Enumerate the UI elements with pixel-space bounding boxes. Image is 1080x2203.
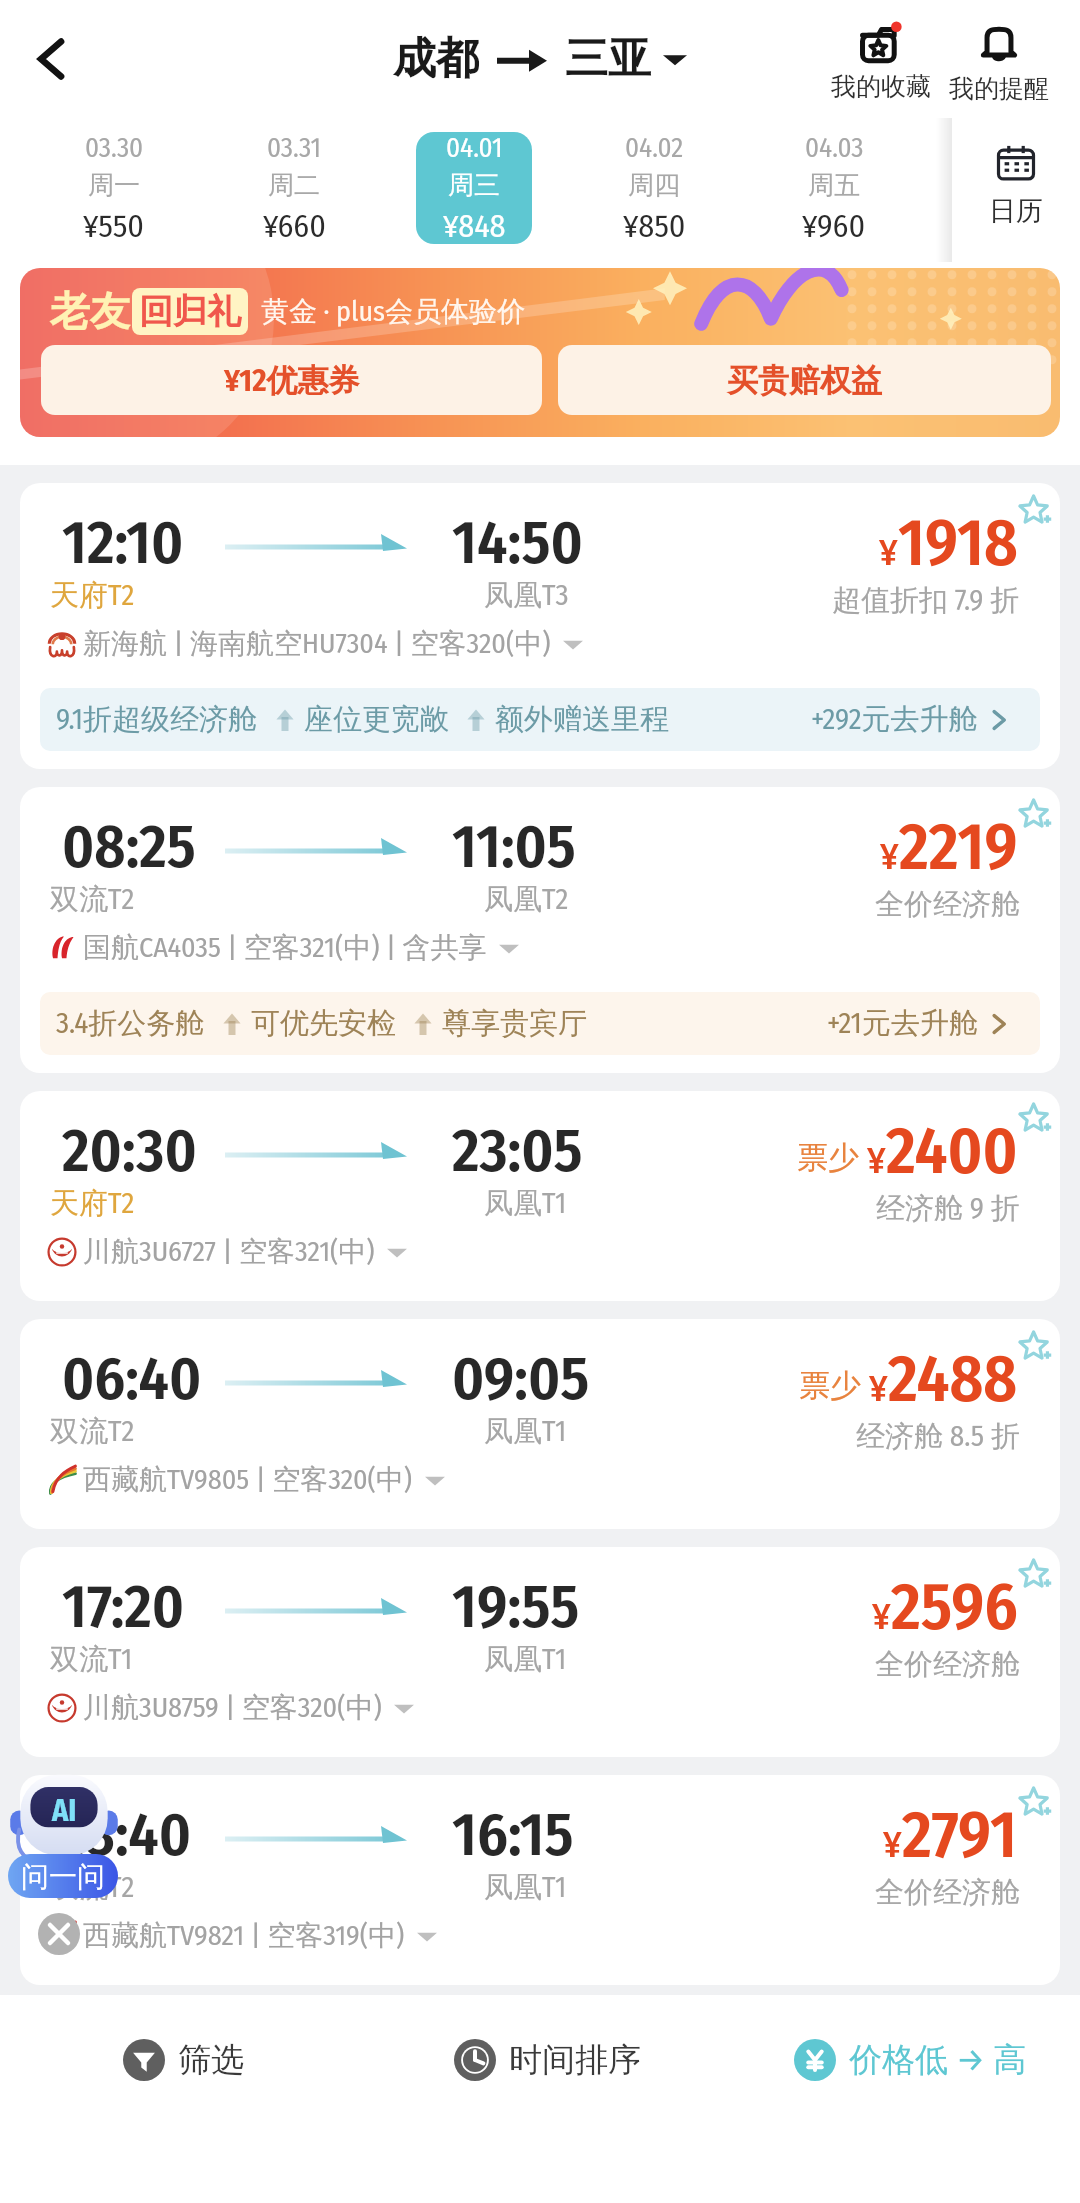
staticText: 全价经济舱 <box>875 1874 1020 1911</box>
button[interactable]: 时间排序 <box>454 2030 641 2090</box>
button[interactable]: 12:10 <box>20 483 1060 769</box>
staticText: 我的收藏 <box>831 71 931 102</box>
staticText: 时间排序 <box>509 2039 641 2081</box>
button[interactable]: 日历 <box>952 144 1080 228</box>
staticText: 03.31 <box>267 132 321 164</box>
staticText: +21元去升舱 <box>827 1005 978 1042</box>
staticText: AI <box>52 1793 77 1829</box>
staticText: ¥ <box>867 1138 886 1182</box>
staticText: 尊享贵宾厅 <box>442 1005 587 1042</box>
staticText: 票少 <box>799 1366 861 1405</box>
staticText: ¥ <box>872 1594 891 1638</box>
staticText: 价格低 → 高 <box>849 2039 1027 2081</box>
button[interactable]: 9.1折超级经济舱 <box>56 688 1010 751</box>
staticText: 04.02 <box>625 132 684 164</box>
staticText: ¥ <box>880 834 899 878</box>
staticText: 17:20 <box>62 1571 185 1643</box>
staticText: 川航3U8759 | 空客320(中) <box>83 1690 382 1725</box>
staticText: 天府T2 <box>50 577 135 614</box>
staticText: 凤凰T2 <box>484 881 569 918</box>
staticText: 04.01 <box>446 132 503 164</box>
staticText: ¥660 <box>263 207 326 244</box>
button[interactable]: 03.30 <box>56 132 172 244</box>
staticText: 凤凰T1 <box>484 1641 567 1678</box>
button[interactable]: 04.03 <box>776 132 892 244</box>
staticText: 凤凰T1 <box>484 1185 567 1222</box>
button[interactable]: 03.31 <box>236 132 352 244</box>
staticText: 日历 <box>989 194 1043 228</box>
staticText: 周三 <box>448 169 500 202</box>
staticText: 23:05 <box>452 1115 583 1187</box>
staticText: 我的提醒 <box>949 73 1049 104</box>
staticText: 1918 <box>898 504 1018 582</box>
staticText: 西藏航TV9805 | 空客320(中) <box>83 1462 413 1497</box>
button[interactable]: 买贵赔权益 <box>558 345 1051 415</box>
staticText: 双流T2 <box>50 1869 135 1906</box>
button[interactable]: AI assistant <box>8 1768 120 1880</box>
staticText: 08:25 <box>62 811 196 883</box>
staticText: 11:05 <box>452 811 576 883</box>
staticText: 06:40 <box>62 1343 202 1415</box>
staticText: 周二 <box>268 169 320 202</box>
button[interactable]: 我的提醒 <box>940 20 1058 106</box>
staticText: 三亚 <box>565 32 651 86</box>
button[interactable]: 06:40 <box>20 1319 1060 1529</box>
button[interactable]: 价格低 → 高 <box>794 2030 1027 2090</box>
staticText: 额外赠送里程 <box>495 701 669 738</box>
staticText: 9.1折超级经济舱 <box>56 701 258 738</box>
staticText: 问一问 <box>21 1859 105 1894</box>
staticText: 全价经济舱 <box>875 1646 1020 1683</box>
staticText: 票少 <box>797 1138 859 1177</box>
staticText: 天府T2 <box>50 1185 135 1222</box>
staticText: 12:10 <box>62 507 184 579</box>
staticText: 双流T2 <box>50 1413 135 1450</box>
staticText: 03.30 <box>85 132 144 164</box>
staticText: 16:15 <box>452 1799 574 1871</box>
button[interactable]: 筛选 <box>123 2030 244 2090</box>
staticText: 回归礼 <box>139 290 241 333</box>
button[interactable]: 04.02 <box>596 132 712 244</box>
button[interactable]: 问一问 <box>8 1854 118 1898</box>
staticText: 3.4折公务舱 <box>56 1005 205 1042</box>
button[interactable]: Close <box>38 1913 80 1955</box>
staticText: 新海航 | 海南航空HU7304 | 空客320(中) <box>83 626 551 661</box>
button[interactable]: 我的收藏 <box>822 20 940 104</box>
button[interactable]: 20:30 <box>20 1091 1060 1301</box>
staticText: 20:30 <box>62 1115 197 1187</box>
button[interactable]: 13:40 <box>20 1775 1060 1985</box>
staticText: 13:40 <box>62 1799 192 1871</box>
button[interactable]: 3.4折公务舱 <box>56 992 1010 1055</box>
staticText: 凤凰T3 <box>484 577 569 614</box>
staticText: 超值折扣 7.9 折 <box>832 582 1020 619</box>
button[interactable]: Back <box>14 21 90 97</box>
staticText: 2219 <box>899 808 1018 886</box>
staticText: 04.03 <box>805 132 864 164</box>
staticText: 09:05 <box>452 1343 590 1415</box>
staticText: 2596 <box>891 1568 1018 1646</box>
staticText: 双流T2 <box>50 881 135 918</box>
button[interactable]: 17:20 <box>20 1547 1060 1757</box>
staticText: 2488 <box>888 1340 1018 1418</box>
staticText: +292元去升舱 <box>811 701 978 738</box>
staticText: 双流T1 <box>50 1641 133 1678</box>
staticText: 14:50 <box>452 507 583 579</box>
staticText: 老友 <box>50 286 130 336</box>
staticText: ¥12优惠券 <box>224 361 360 400</box>
staticText: ¥ <box>869 1366 888 1410</box>
staticText: ¥550 <box>83 207 145 244</box>
staticText: ¥848 <box>443 207 506 244</box>
staticText: ¥ <box>879 530 898 574</box>
button[interactable]: 老友 <box>20 268 1060 437</box>
staticText: 西藏航TV9821 | 空客319(中) <box>83 1918 405 1953</box>
button[interactable]: 08:25 <box>20 787 1060 1073</box>
button[interactable]: ¥12优惠券 <box>41 345 542 415</box>
staticText: 可优先安检 <box>251 1005 396 1042</box>
staticText: 座位更宽敞 <box>304 701 449 738</box>
staticText: ¥960 <box>802 207 866 244</box>
staticText: 黄金 · plus会员体验价 <box>261 294 525 329</box>
staticText: 凤凰T1 <box>484 1869 567 1906</box>
button[interactable]: 04.01 <box>416 132 532 244</box>
staticText: 19:55 <box>452 1571 580 1643</box>
staticText: 2400 <box>886 1112 1018 1190</box>
staticText: 全价经济舱 <box>875 886 1020 923</box>
